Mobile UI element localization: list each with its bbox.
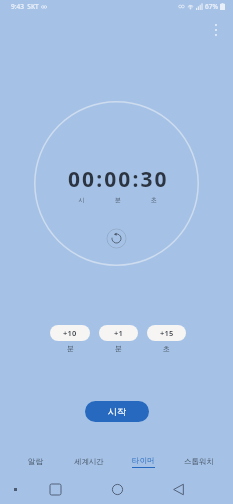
- button[interactable]: More options: [204, 18, 228, 42]
- staticText: +15: [160, 328, 174, 338]
- staticText: 67%: [205, 2, 218, 11]
- button[interactable]: Home: [107, 479, 128, 500]
- staticText: 초: [136, 196, 172, 204]
- staticText: 9:43 SKT: [11, 2, 39, 11]
- staticText: 초: [163, 344, 170, 353]
- button[interactable]: Recents: [45, 479, 66, 500]
- button[interactable]: +1: [99, 325, 138, 341]
- button[interactable]: Back: [168, 479, 189, 500]
- staticText: 스톱워치: [184, 457, 214, 466]
- button[interactable]: 알람: [8, 451, 62, 473]
- button[interactable]: Hide keyboard: [6, 480, 24, 498]
- staticText: 시작: [108, 406, 126, 417]
- staticText: 분: [100, 196, 136, 204]
- staticText: 타이머: [132, 456, 155, 465]
- staticText: 시: [63, 196, 100, 204]
- button[interactable]: +15: [147, 325, 186, 341]
- staticText: 분: [67, 344, 74, 353]
- button[interactable]: Reset: [106, 228, 127, 249]
- staticText: 분: [115, 344, 122, 353]
- staticText: +10: [63, 328, 77, 338]
- button[interactable]: +10: [50, 325, 90, 341]
- staticText: 00:00:30: [68, 165, 169, 194]
- staticText: +1: [114, 328, 123, 338]
- staticText: 알람: [28, 457, 43, 466]
- button[interactable]: 시작: [85, 401, 149, 422]
- button[interactable]: 타이머: [116, 451, 171, 473]
- button[interactable]: 세계시간: [62, 451, 116, 473]
- staticText: 세계시간: [74, 457, 104, 466]
- button[interactable]: 스톱워치: [171, 451, 226, 473]
